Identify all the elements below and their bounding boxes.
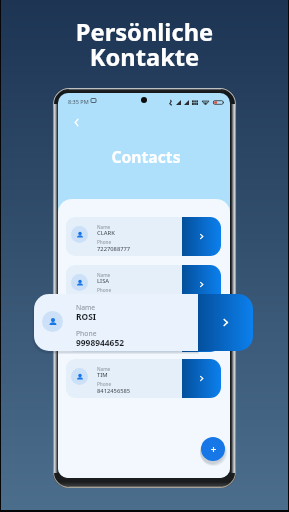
staticText: Name	[97, 224, 111, 230]
button[interactable]: Open ROSI	[198, 294, 253, 351]
staticText: 8:35 PM	[68, 98, 89, 105]
staticText: Phone	[97, 287, 112, 293]
staticText: Phone	[76, 329, 97, 338]
staticText: 8412456585	[97, 387, 131, 395]
staticText: Contacts	[60, 146, 230, 167]
button[interactable]: Name	[66, 359, 182, 398]
button[interactable]: Open TIM	[182, 359, 221, 398]
staticText: Persönliche Kontakte	[0, 16, 289, 73]
staticText: 7227088777	[97, 245, 131, 253]
staticText: Name	[76, 303, 96, 312]
button[interactable]: Name	[66, 217, 182, 256]
button[interactable]: Name	[66, 313, 182, 352]
staticText: -- -- -- -- --	[97, 341, 128, 349]
staticText: 9998944652	[76, 337, 124, 348]
staticText: CLARK	[97, 229, 115, 237]
staticText: ROSI	[76, 311, 97, 322]
staticText: Name	[97, 272, 111, 278]
staticText: Phone	[97, 381, 112, 387]
staticText: Name	[97, 366, 111, 372]
staticText: Phone	[97, 239, 112, 245]
button[interactable]: Open CLARK	[182, 217, 221, 256]
button[interactable]: Back	[68, 114, 84, 130]
button[interactable]: Add contact	[201, 437, 225, 461]
staticText: TIM	[97, 371, 108, 379]
button[interactable]: Name	[34, 294, 198, 351]
button[interactable]: Open JOHN	[182, 313, 221, 352]
staticText: Phone	[97, 335, 112, 341]
button[interactable]: Open LISA	[182, 265, 221, 304]
button[interactable]: Name	[66, 265, 182, 304]
staticText: LISA	[97, 277, 110, 285]
